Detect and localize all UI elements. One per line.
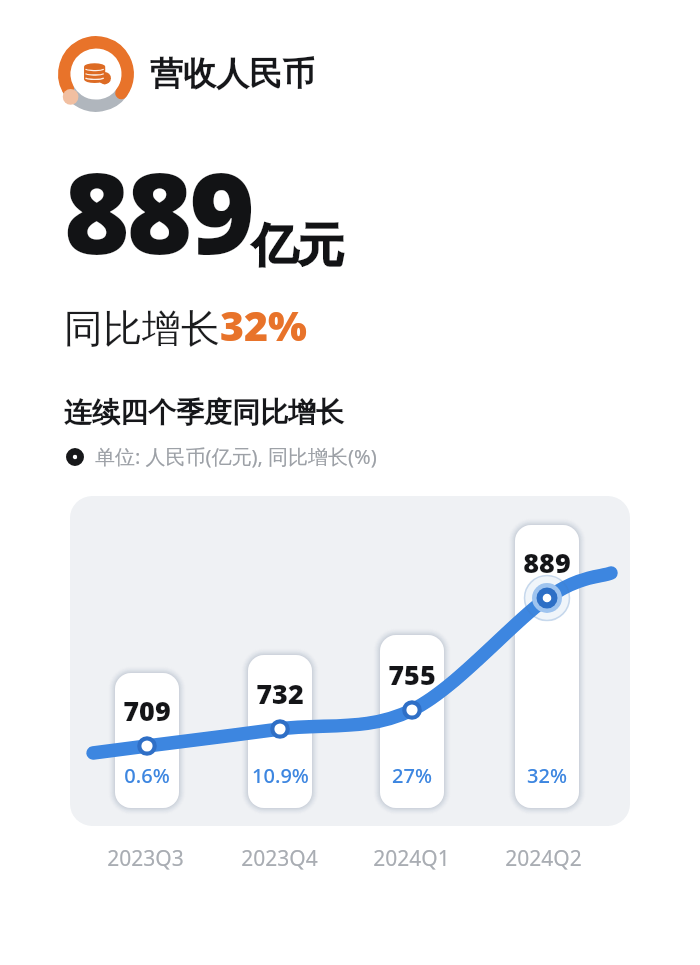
staticText: 32% bbox=[527, 762, 567, 789]
staticText: 2023Q4 bbox=[241, 844, 318, 873]
staticText: 亿元 bbox=[252, 217, 344, 275]
staticText: 732 bbox=[256, 675, 304, 712]
staticText: 32% bbox=[220, 297, 307, 353]
staticText: 同比增长 bbox=[64, 304, 220, 353]
staticText: 27% bbox=[392, 762, 432, 789]
staticText: 2024Q1 bbox=[373, 844, 450, 873]
staticText: 10.9% bbox=[252, 762, 309, 789]
button[interactable]: Revenue bbox=[50, 28, 315, 120]
staticText: 709 bbox=[123, 692, 171, 729]
staticText: 2024Q2 bbox=[505, 844, 582, 873]
staticText: 889 bbox=[64, 134, 252, 287]
staticText: 营收人民币 bbox=[150, 53, 315, 95]
staticText: 2023Q3 bbox=[107, 844, 184, 873]
staticText: 连续四个季度同比增长 bbox=[64, 395, 344, 430]
other: Revenue bbox=[50, 28, 142, 120]
staticText: 755 bbox=[388, 656, 436, 693]
staticText: 0.6% bbox=[124, 762, 170, 789]
staticText: 889 bbox=[523, 544, 571, 581]
staticText: 单位: 人民币(亿元), 同比增长(%) bbox=[95, 443, 377, 470]
button[interactable]: 709 bbox=[70, 496, 630, 826]
